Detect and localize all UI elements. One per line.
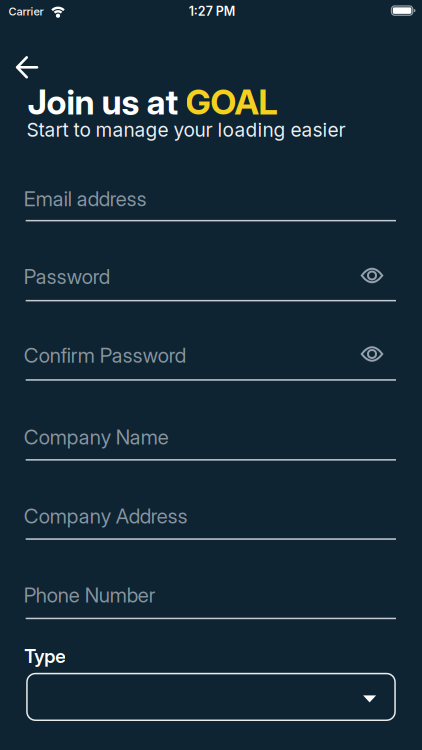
staticText: Password [24,264,110,289]
button[interactable]: Show password [360,267,383,283]
button[interactable]: Back [16,56,38,78]
staticText: Join us at [27,81,185,123]
staticText: Type [24,645,66,668]
staticText: Email address [24,186,147,211]
staticText: GOAL [185,81,277,123]
staticText: Company Name [24,425,169,449]
button[interactable]: Show confirm password [360,346,383,362]
staticText: Carrier [9,5,44,18]
staticText: Company Address [24,504,188,528]
staticText: Confirm Password [24,343,186,368]
staticText: Phone Number [24,583,156,607]
staticText: 1:27 PM [189,4,236,19]
staticText: Start to manage your loading easier [27,118,346,141]
button[interactable]: Type [26,673,396,721]
